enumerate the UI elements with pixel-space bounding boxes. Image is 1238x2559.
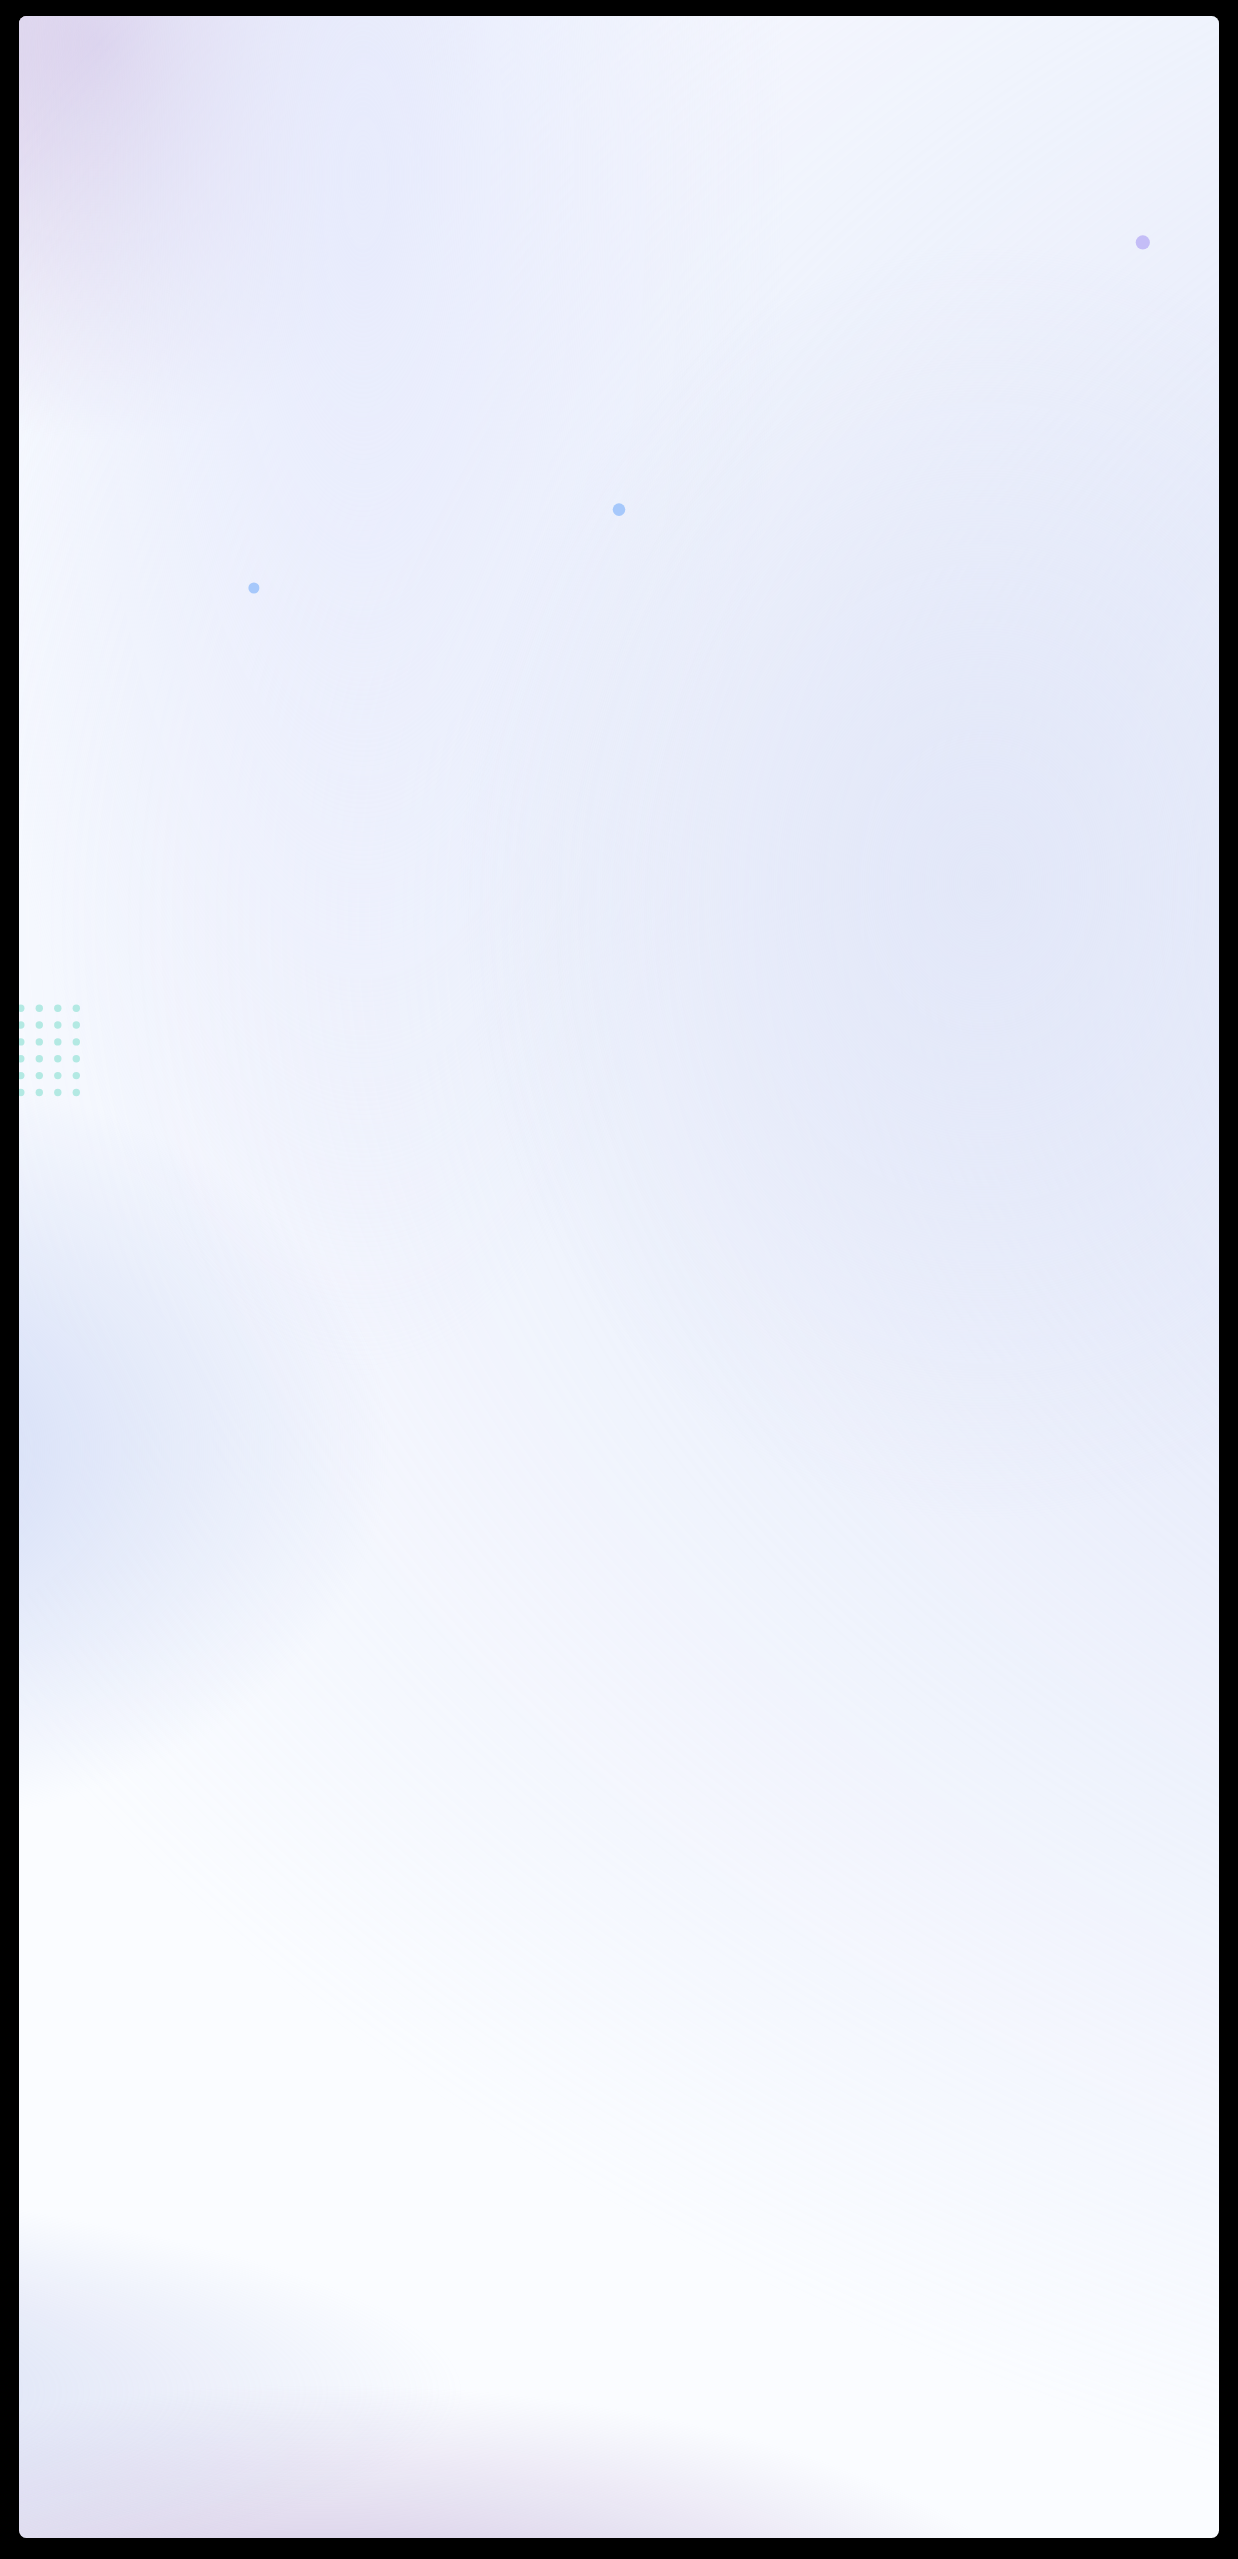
button[interactable]: Background bbox=[19, 16, 1219, 2538]
